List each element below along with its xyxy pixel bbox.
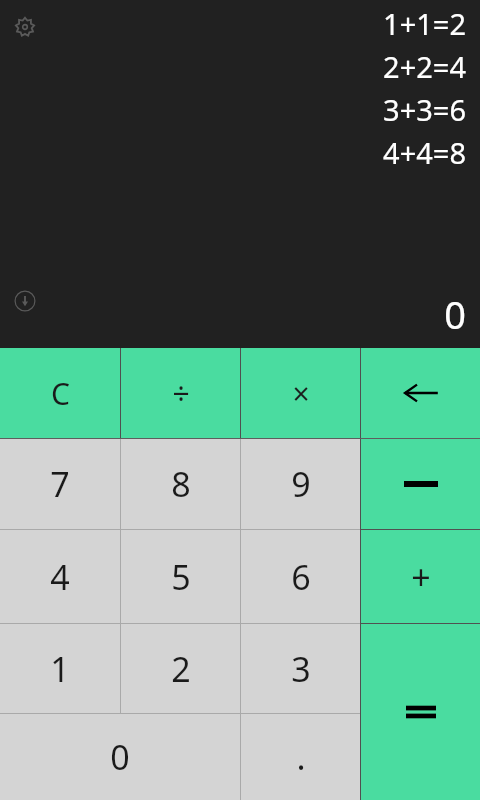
staticText: × xyxy=(292,373,310,414)
button[interactable]: ÷ xyxy=(121,348,240,438)
button[interactable]: 6 xyxy=(241,530,360,623)
staticText: 3+3=6 xyxy=(383,90,466,129)
button[interactable]: 4 xyxy=(0,530,120,623)
button[interactable]: Subtract xyxy=(361,439,480,529)
button[interactable]: Equals xyxy=(361,624,480,800)
button[interactable]: History xyxy=(10,286,40,316)
button[interactable]: 9 xyxy=(241,439,360,529)
staticText: 4+4=8 xyxy=(383,133,466,172)
staticText: 8 xyxy=(171,461,191,507)
button[interactable]: 5 xyxy=(121,530,240,623)
staticText: ÷ xyxy=(172,373,190,414)
button[interactable]: + xyxy=(361,530,480,623)
staticText: 2+2=4 xyxy=(383,47,466,86)
button[interactable]: 3 xyxy=(241,624,360,713)
staticText: + xyxy=(411,554,431,600)
staticText: 0 xyxy=(444,288,466,340)
button[interactable]: . xyxy=(241,714,360,800)
button[interactable]: 1 xyxy=(0,624,120,713)
staticText: 7 xyxy=(50,461,70,507)
button[interactable]: 8 xyxy=(121,439,240,529)
staticText: C xyxy=(51,373,70,414)
staticText: 3 xyxy=(291,646,311,692)
staticText: 6 xyxy=(291,554,311,600)
button[interactable]: Settings xyxy=(10,12,40,42)
button[interactable]: × xyxy=(241,348,360,438)
staticText: 5 xyxy=(171,554,191,600)
button[interactable]: 7 xyxy=(0,439,120,529)
button[interactable]: 2 xyxy=(121,624,240,713)
staticText: 9 xyxy=(291,461,311,507)
staticText: 0 xyxy=(110,734,130,780)
button[interactable]: C xyxy=(0,348,120,438)
button[interactable]: Backspace xyxy=(361,348,480,438)
staticText: . xyxy=(296,734,306,780)
staticText: 1+1=2 xyxy=(383,4,466,43)
button[interactable]: 0 xyxy=(0,714,240,800)
staticText: 1 xyxy=(50,646,70,692)
staticText: 2 xyxy=(171,646,191,692)
staticText: 4 xyxy=(50,554,70,600)
